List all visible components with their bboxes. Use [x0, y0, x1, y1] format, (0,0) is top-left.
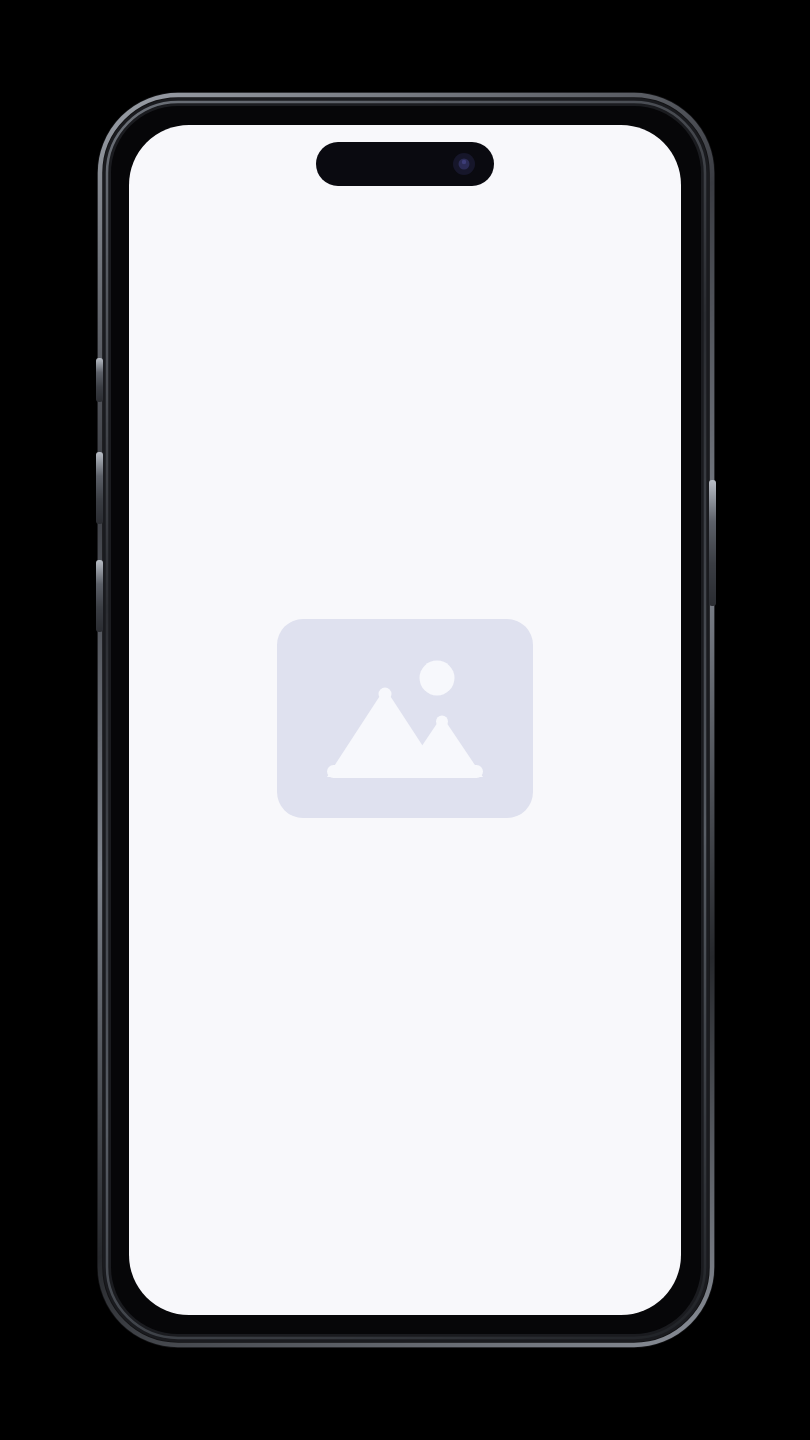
button[interactable]: Image placeholder: [0, 0, 810, 1440]
